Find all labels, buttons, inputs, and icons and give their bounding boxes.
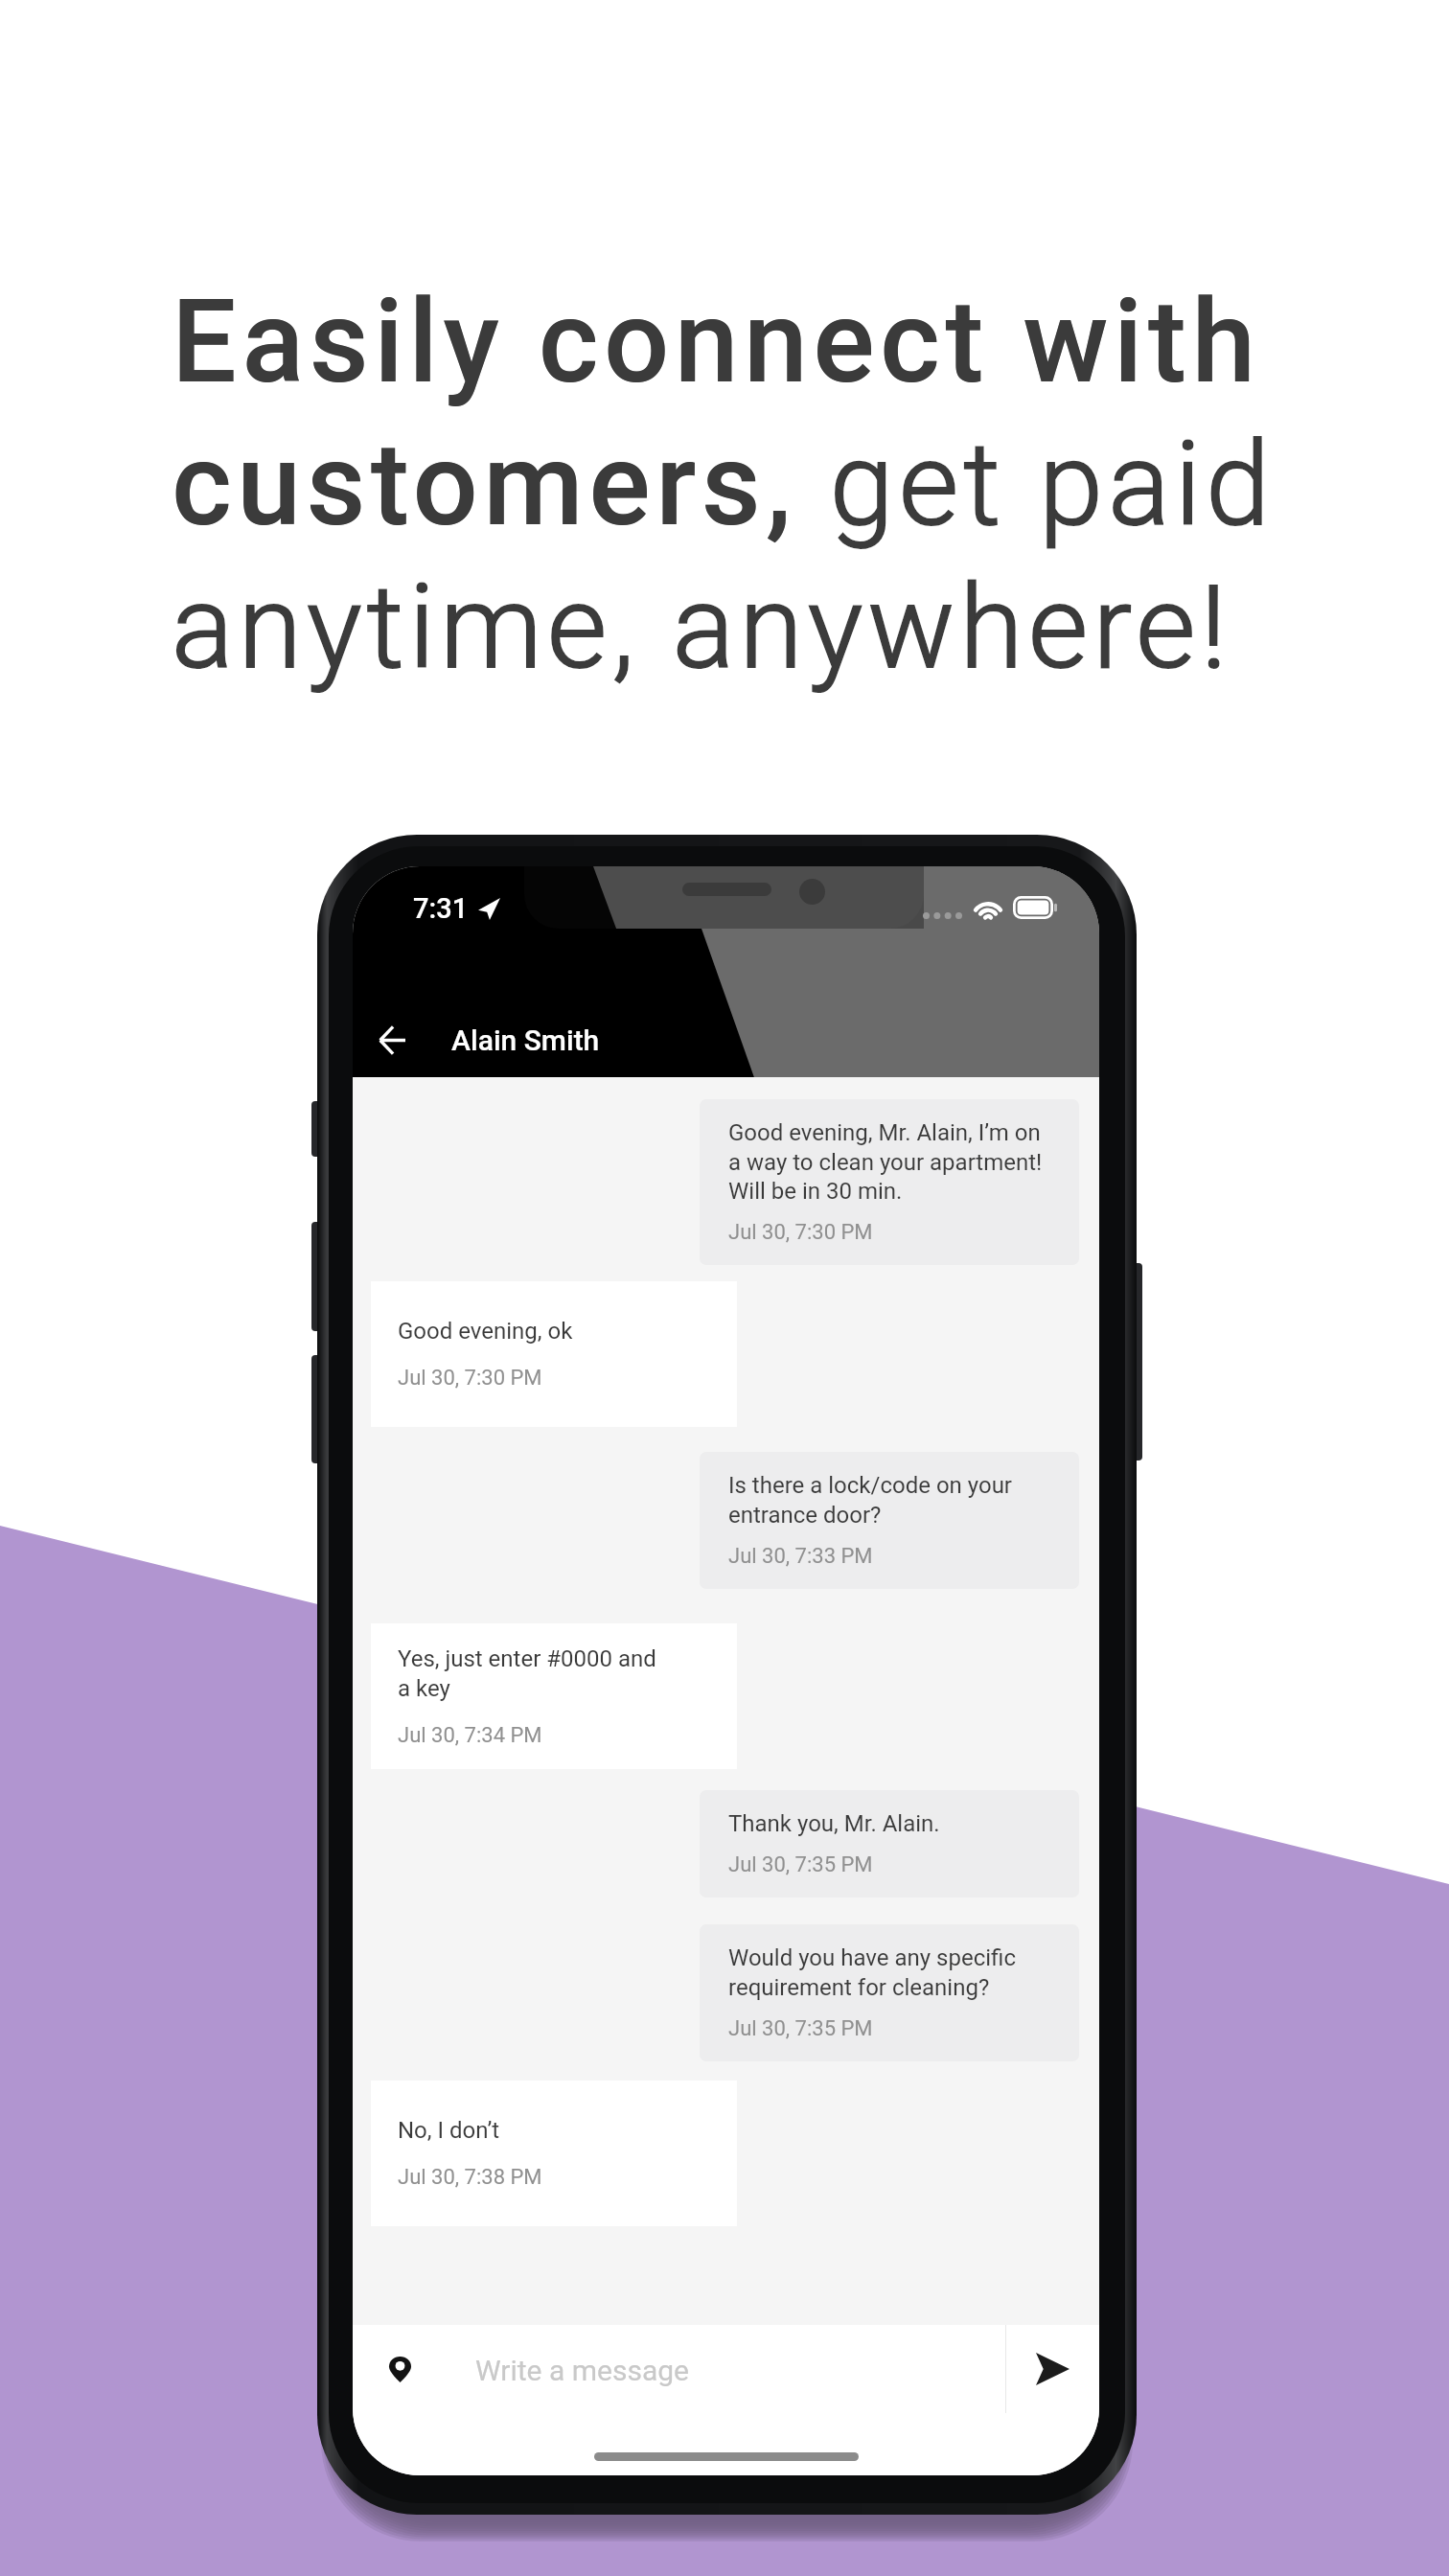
button[interactable]: No, I don’t: [371, 2081, 737, 2226]
staticText: Jul 30, 7:34 PM: [398, 1723, 542, 1748]
staticText: Is there a lock/code on your entrance do…: [728, 1472, 1013, 1529]
staticText: Write a message: [475, 2354, 689, 2387]
staticText: Jul 30, 7:35 PM: [728, 1852, 873, 1877]
staticText: Easily connect with customers, get paid …: [172, 275, 1302, 695]
button[interactable]: Back: [356, 1004, 427, 1075]
staticText: Jul 30, 7:35 PM: [728, 2016, 873, 2041]
staticText: Would you have any specific requirement …: [728, 1944, 1016, 2001]
staticText: Jul 30, 7:30 PM: [728, 1220, 873, 1245]
staticText: Jul 30, 7:38 PM: [398, 2165, 542, 2190]
staticText: Yes, just enter #0000 and a key: [398, 1645, 656, 1702]
button[interactable]: Yes, just enter #0000 and a key: [371, 1623, 737, 1769]
staticText: Good evening, ok: [398, 1318, 573, 1345]
button[interactable]: Attach location: [362, 2325, 437, 2413]
button[interactable]: Is there a lock/code on your entrance do…: [700, 1452, 1079, 1589]
button[interactable]: Thank you, Mr. Alain.: [700, 1790, 1079, 1897]
staticText: Jul 30, 7:30 PM: [398, 1366, 542, 1391]
staticText: No, I don’t: [398, 2117, 500, 2144]
staticText: 7:31: [413, 892, 469, 925]
button[interactable]: Would you have any specific requirement …: [700, 1924, 1079, 2061]
staticText: Alain Smith: [451, 1023, 600, 1057]
button[interactable]: Good evening, ok: [371, 1281, 737, 1427]
staticText: Good evening, Mr. Alain, I’m on a way to…: [728, 1119, 1043, 1205]
button[interactable]: Good evening, Mr. Alain, I’m on a way to…: [700, 1099, 1079, 1265]
staticText: Thank you, Mr. Alain.: [728, 1810, 940, 1837]
button[interactable]: Send: [1006, 2325, 1099, 2413]
staticText: Easily connect with customers, get paid …: [172, 275, 1302, 695]
staticText: Jul 30, 7:33 PM: [728, 1544, 873, 1569]
